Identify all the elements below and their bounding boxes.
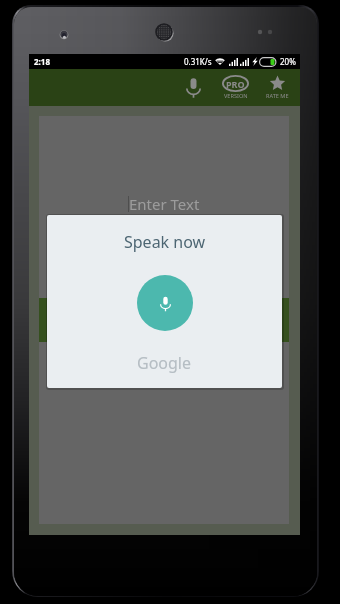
staticText: Google bbox=[137, 352, 192, 374]
staticText: Speak now bbox=[124, 231, 206, 253]
button[interactable] bbox=[39, 298, 289, 342]
staticText: RATE ME bbox=[266, 92, 289, 100]
staticText: 2:18 bbox=[34, 56, 50, 67]
staticText: 0.31K/s bbox=[184, 56, 212, 67]
button[interactable]: Voice input bbox=[172, 69, 214, 106]
staticText: VERSION bbox=[224, 92, 248, 100]
staticText: 20% bbox=[280, 56, 296, 67]
button[interactable]: Microphone bbox=[137, 275, 193, 331]
staticText: Enter Text bbox=[129, 194, 200, 214]
staticText: PRO bbox=[226, 78, 245, 90]
button[interactable]: RATE ME bbox=[256, 69, 298, 106]
button[interactable]: PRO bbox=[214, 69, 256, 106]
